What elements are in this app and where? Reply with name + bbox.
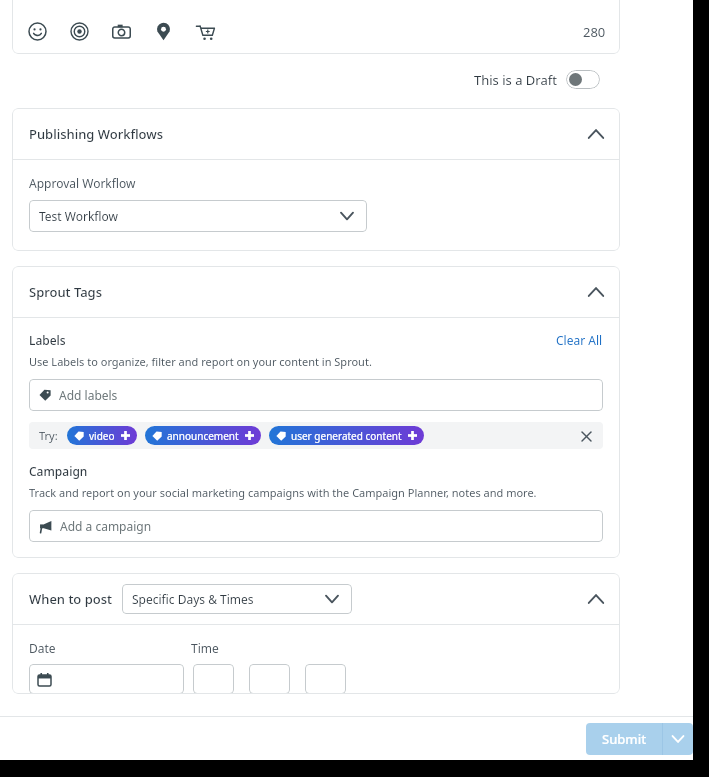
button[interactable]: Add labels bbox=[29, 379, 603, 411]
button[interactable] bbox=[193, 664, 234, 694]
button[interactable]: Location bbox=[152, 20, 174, 42]
button[interactable]: user generated content bbox=[269, 426, 424, 445]
staticText: Date bbox=[29, 640, 56, 656]
button[interactable]: Publishing Workflows bbox=[12, 108, 620, 159]
staticText: Track and report on your social marketin… bbox=[29, 485, 537, 500]
button[interactable]: Shop bbox=[194, 20, 216, 42]
staticText: Try: bbox=[39, 428, 58, 443]
button[interactable]: This is a Draft bbox=[472, 70, 602, 89]
button[interactable] bbox=[305, 664, 346, 694]
staticText: video bbox=[89, 429, 115, 443]
other: More submit options bbox=[663, 723, 693, 755]
staticText: Sprout Tags bbox=[29, 283, 102, 301]
button[interactable]: Submit bbox=[586, 723, 693, 755]
staticText: Campaign bbox=[29, 463, 88, 479]
button[interactable]: Target bbox=[68, 20, 90, 42]
staticText: This is a Draft bbox=[474, 71, 557, 89]
staticText: 280 bbox=[583, 23, 606, 41]
button[interactable]: announcement bbox=[145, 426, 261, 445]
button[interactable]: Emoji bbox=[26, 20, 48, 42]
button[interactable]: Dismiss bbox=[577, 427, 595, 445]
other: Collapse Sprout Tags bbox=[584, 280, 608, 304]
staticText: Clear All bbox=[556, 332, 603, 348]
staticText: When to post bbox=[29, 590, 112, 608]
button[interactable]: Collapse When to post bbox=[584, 587, 608, 611]
other: Collapse Publishing Workflows bbox=[584, 122, 608, 146]
button[interactable]: Camera bbox=[110, 20, 132, 42]
staticText: announcement bbox=[167, 429, 239, 443]
staticText: Time bbox=[191, 640, 219, 656]
staticText: user generated content bbox=[291, 429, 402, 443]
button[interactable]: Specific Days & Times bbox=[122, 584, 352, 614]
staticText: Publishing Workflows bbox=[29, 125, 164, 143]
staticText: Submit bbox=[602, 730, 647, 748]
button[interactable] bbox=[249, 664, 290, 694]
staticText: Use Labels to organize, filter and repor… bbox=[29, 354, 372, 369]
staticText: Test Workflow bbox=[39, 208, 119, 224]
button[interactable]: Test Workflow bbox=[29, 200, 367, 232]
button[interactable]: Add a campaign bbox=[29, 510, 603, 542]
staticText: Add a campaign bbox=[60, 518, 152, 534]
staticText: Add labels bbox=[59, 387, 118, 403]
button[interactable]: Sprout Tags bbox=[12, 266, 620, 317]
staticText: Specific Days & Times bbox=[132, 591, 254, 607]
button[interactable]: Clear All bbox=[556, 332, 603, 348]
button[interactable] bbox=[29, 664, 184, 694]
staticText: Approval Workflow bbox=[29, 175, 136, 191]
button[interactable]: video bbox=[67, 426, 137, 445]
staticText: Labels bbox=[29, 332, 66, 348]
